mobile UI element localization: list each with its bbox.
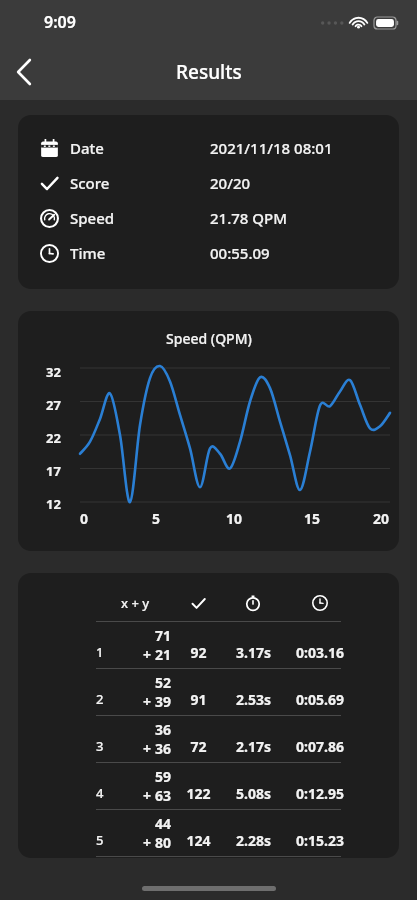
staticText: 00:55.09 (210, 243, 270, 263)
button[interactable]: Back (0, 48, 48, 96)
staticText: 0:05.69 (296, 690, 344, 709)
staticText: + (143, 786, 155, 805)
staticText: 0:07.86 (296, 737, 344, 756)
staticText: 5 (96, 831, 104, 849)
staticText: 27 (46, 396, 61, 414)
staticText: + (143, 645, 155, 664)
staticText: 5.08s (236, 784, 271, 803)
staticText: 36 (155, 739, 172, 758)
staticText: 20 (373, 509, 390, 528)
button[interactable]: 2 (96, 669, 356, 715)
staticText: 9:09 (44, 11, 76, 33)
staticText: 2.28s (236, 831, 271, 850)
staticText: + (143, 833, 155, 852)
staticText: Date (70, 138, 104, 158)
staticText: 22 (46, 429, 61, 447)
staticText: 10 (226, 509, 243, 528)
staticText: 1 (96, 643, 104, 661)
button[interactable]: Date (18, 115, 399, 289)
staticText: 0 (80, 509, 89, 528)
staticText: Speed (70, 208, 115, 228)
staticText: Score (70, 173, 110, 193)
staticText: 20/20 (210, 173, 251, 193)
staticText: 5 (152, 509, 161, 528)
button[interactable]: 1 (96, 622, 356, 668)
staticText: 36 (155, 720, 172, 739)
staticText: 4 (96, 784, 104, 802)
staticText: 0:12.95 (296, 784, 344, 803)
staticText: Speed (QPM) (166, 329, 252, 348)
staticText: 21.78 QPM (210, 208, 287, 228)
staticText: 124 (186, 831, 211, 850)
staticText: 0:03.16 (296, 643, 344, 662)
button[interactable]: 5 (96, 810, 356, 856)
staticText: 59 (155, 767, 172, 786)
staticText: 92 (190, 643, 207, 662)
staticText: Time (70, 243, 106, 263)
staticText: + (143, 692, 155, 711)
button[interactable]: Speed (QPM) (18, 311, 399, 551)
staticText: 0:15.23 (296, 831, 344, 850)
staticText: Results (176, 59, 242, 85)
staticText: 3.17s (236, 643, 271, 662)
staticText: 3 (96, 737, 104, 755)
staticText: 32 (46, 363, 61, 381)
staticText: 2.53s (236, 690, 271, 709)
button[interactable]: x + y (18, 573, 399, 858)
staticText: 12 (46, 495, 61, 513)
staticText: 80 (155, 833, 172, 852)
staticText: 71 (155, 626, 172, 645)
staticText: 17 (46, 462, 61, 480)
staticText: 122 (186, 784, 211, 803)
button[interactable]: 3 (96, 716, 356, 762)
staticText: 39 (155, 692, 172, 711)
staticText: x + y (121, 594, 150, 612)
staticText: 52 (155, 673, 172, 692)
button[interactable]: 4 (96, 763, 356, 809)
staticText: 21 (155, 645, 172, 664)
staticText: 15 (304, 509, 321, 528)
staticText: 63 (155, 786, 172, 805)
staticText: + (143, 739, 155, 758)
staticText: 72 (190, 737, 207, 756)
staticText: 2 (96, 690, 104, 708)
staticText: 2.17s (236, 737, 271, 756)
staticText: 91 (190, 690, 207, 709)
staticText: 44 (155, 814, 172, 833)
staticText: 2021/11/18 08:01 (210, 138, 333, 158)
